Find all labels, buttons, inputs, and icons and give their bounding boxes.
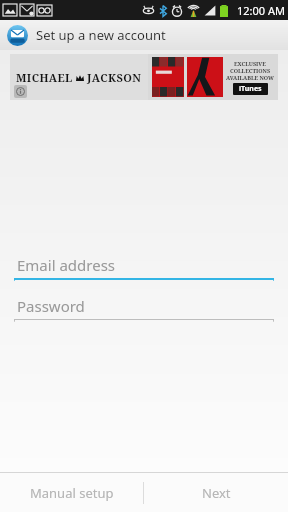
staticText: Email address [17, 255, 116, 275]
staticText: 12:00 AM [237, 3, 285, 18]
staticText: Password [17, 296, 85, 316]
button[interactable]: Ad info [14, 85, 27, 98]
staticText: Manual setup [30, 484, 114, 502]
staticText: Next [202, 484, 231, 502]
staticText: COLLECTIONS [230, 67, 271, 74]
staticText: AVAILABLE NOW [226, 74, 274, 81]
button[interactable]: Password [14, 293, 274, 322]
staticText: MICHAEL [16, 70, 73, 85]
staticText: iTunes [239, 84, 262, 94]
button[interactable]: Email address [14, 252, 274, 281]
button[interactable]: Manual setup [0, 473, 143, 512]
staticText: EXCLUSIVE [234, 60, 266, 67]
button[interactable]: Advertisement [10, 54, 278, 100]
staticText: Set up a new account [36, 26, 166, 44]
button[interactable]: Set up a new account [0, 20, 288, 50]
button[interactable]: Next [144, 473, 288, 512]
staticText: JACKSON [87, 70, 142, 85]
